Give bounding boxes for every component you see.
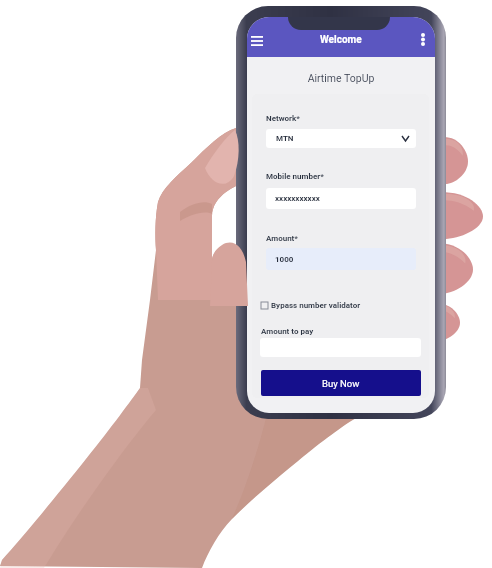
staticText: Bypass number validator	[271, 301, 361, 310]
button[interactable]: Open navigation menu	[247, 29, 269, 53]
staticText: Buy Now	[322, 378, 360, 389]
staticText: Welcome	[320, 34, 362, 46]
staticText: Amount to pay	[261, 327, 314, 336]
button[interactable]: Buy Now	[261, 370, 421, 396]
button[interactable]: More options	[412, 28, 434, 50]
button[interactable]: Network selector	[266, 129, 416, 148]
staticText: Mobile number*	[266, 172, 324, 181]
staticText: Amount*	[266, 234, 298, 243]
button[interactable]: Bypass number validator	[261, 301, 361, 310]
button[interactable]: Mobile number field	[266, 188, 416, 209]
staticText: Airtime TopUp	[247, 72, 435, 84]
staticText: MTN	[276, 134, 294, 143]
staticText: 1000	[275, 255, 294, 264]
staticText: xxxxxxxxxxx	[275, 194, 320, 203]
staticText: Network*	[266, 114, 300, 123]
button[interactable]: Amount field	[266, 248, 416, 270]
